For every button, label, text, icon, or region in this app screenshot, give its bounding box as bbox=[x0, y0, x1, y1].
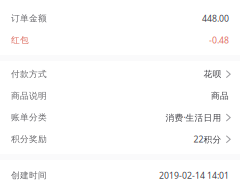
button[interactable]: 账单分类 bbox=[0, 107, 240, 128]
button[interactable]: 商品说明 bbox=[0, 85, 240, 107]
button[interactable]: 订单金额 bbox=[0, 7, 240, 29]
staticText: 商品 bbox=[211, 90, 229, 101]
staticText: 创建时间 bbox=[11, 170, 47, 180]
staticText: 消费·生活日用 bbox=[166, 111, 222, 123]
staticText: 商品说明 bbox=[11, 90, 47, 101]
staticText: 红包 bbox=[11, 35, 29, 45]
button[interactable]: 红包 bbox=[0, 29, 240, 51]
staticText: -0.48 bbox=[209, 34, 229, 46]
staticText: 22积分 bbox=[194, 133, 222, 145]
button[interactable]: 积分奖励 bbox=[0, 128, 240, 150]
staticText: 积分奖励 bbox=[11, 134, 47, 145]
staticText: 花呗 bbox=[204, 69, 222, 79]
button[interactable]: 创建时间 bbox=[0, 164, 240, 180]
staticText: 付款方式 bbox=[11, 69, 47, 79]
staticText: 448.00 bbox=[202, 12, 229, 24]
button[interactable]: 付款方式 bbox=[0, 63, 240, 85]
staticText: 2019-02-14 14:01 bbox=[159, 169, 229, 180]
staticText: 账单分类 bbox=[11, 112, 47, 123]
staticText: 订单金额 bbox=[11, 13, 47, 24]
